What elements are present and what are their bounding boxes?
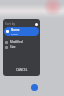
button[interactable]: Modified	[3, 40, 40, 44]
other: Close	[35, 23, 38, 26]
staticText: Name	[11, 28, 20, 32]
button[interactable]: CANCEL	[16, 68, 28, 72]
button[interactable]: Add	[31, 84, 38, 91]
button[interactable]: Name	[4, 27, 39, 36]
staticText: Sort by	[5, 22, 16, 26]
staticText: A to Z	[11, 32, 18, 35]
button[interactable]: Sort by	[3, 21, 40, 27]
staticText: Size	[10, 45, 16, 49]
staticText: Modified	[10, 40, 23, 44]
button[interactable]: Size	[3, 45, 40, 49]
staticText: CANCEL	[16, 68, 28, 72]
